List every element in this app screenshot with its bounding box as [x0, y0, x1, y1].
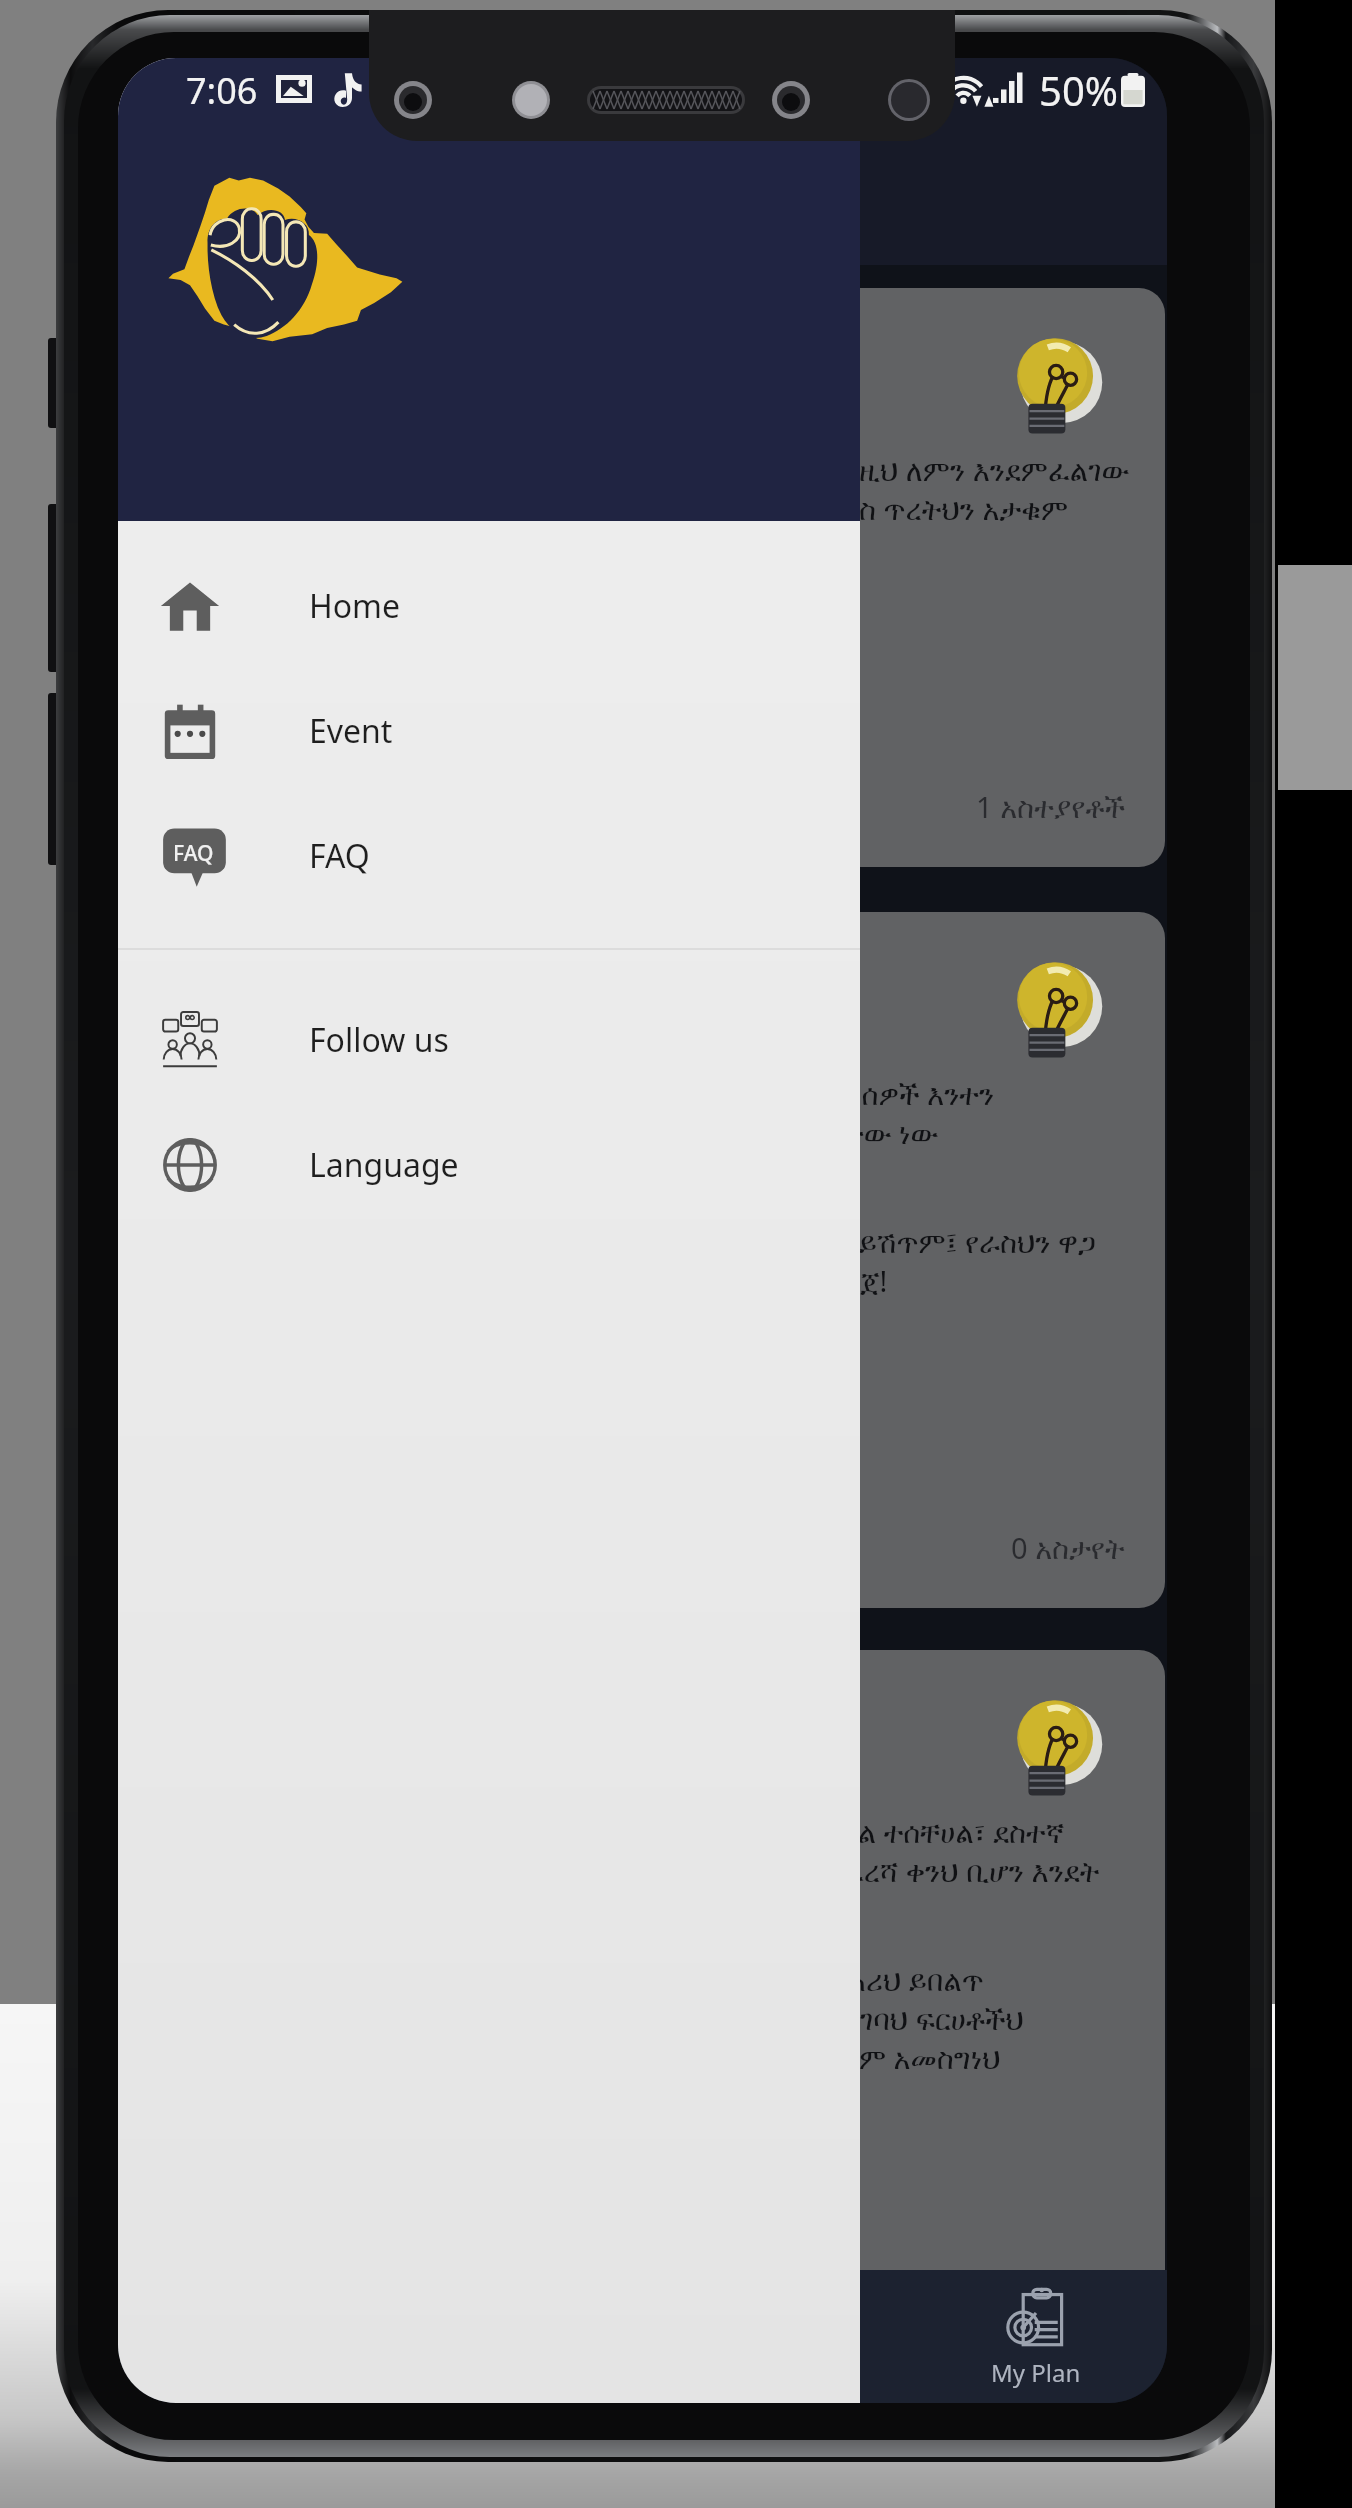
staticText: Home: [309, 584, 401, 628]
staticText: ፤ ሰዎች እንተን: [842, 1074, 995, 1113]
staticText: ታው ነው: [842, 1113, 939, 1152]
staticText: ለም አመስግነህ: [842, 2038, 1001, 2077]
staticText: FAQ: [173, 839, 214, 868]
staticText: ኣይሽጥም፤ የራስህን ዋጋ: [842, 1222, 1096, 1261]
staticText: 0 አስታየት: [1011, 1528, 1125, 1567]
button[interactable]: FAQ: [118, 793, 860, 918]
staticText: Language: [309, 1143, 459, 1187]
button[interactable]: My Plan: [905, 2270, 1167, 2403]
staticText: ጋገባህ ፍርሀቶችህ: [842, 1999, 1024, 2038]
staticText: FAQ: [309, 834, 370, 878]
button[interactable]: Home: [118, 2270, 381, 2403]
staticText: Event: [309, 709, 393, 753]
staticText: ለዚህ ለምን እንደምፈልገው: [842, 450, 1130, 489]
staticText: 1 አስተያየቶች: [976, 787, 1125, 826]
staticText: ጠሪህ ይበልጥ: [842, 1960, 984, 1999]
button[interactable]: ለዚህ ለምን እንደምፈልገው: [140, 288, 1165, 867]
staticText: ሪስ ጥረትህን አታቁም: [842, 489, 1068, 528]
staticText: ፈረሻ ቀንህ ቢሆን እንደት: [842, 1851, 1100, 1890]
staticText: 7:06: [186, 66, 258, 115]
staticText: My Plan: [991, 2356, 1081, 2389]
button[interactable]: ደል ተሰቸሀል፣ ደስተኛ: [140, 1650, 1165, 2346]
button[interactable]: ፤ ሰዎች እንተን: [140, 912, 1165, 1608]
staticText: ዳጀ!: [842, 1261, 888, 1300]
button[interactable]: Event: [643, 2270, 905, 2403]
button[interactable]: Home: [118, 543, 860, 668]
staticText: Follow us: [309, 1018, 449, 1062]
button[interactable]: Follow us: [118, 977, 860, 1102]
button[interactable]: Language: [118, 1102, 860, 1227]
button[interactable]: Event: [118, 668, 860, 793]
staticText: 50%: [1039, 63, 1118, 117]
staticText: ደል ተሰቸሀል፣ ደስተኛ: [842, 1812, 1065, 1851]
